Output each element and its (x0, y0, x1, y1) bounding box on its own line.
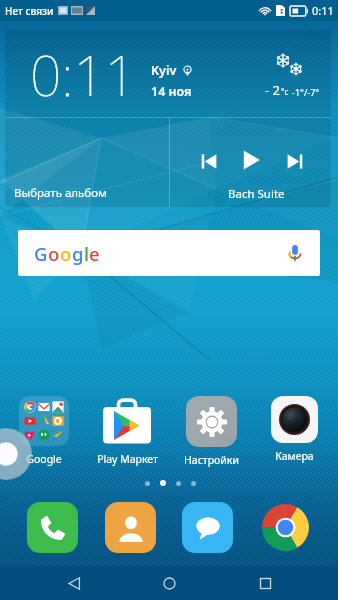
staticText: 0:11 (30, 37, 137, 112)
button[interactable]: Play (237, 147, 263, 173)
button[interactable]: Contacts (105, 502, 156, 553)
button[interactable]: Настройки (171, 396, 251, 467)
staticText: Google (26, 452, 62, 466)
staticText: - 2 (265, 81, 281, 99)
staticText: Камера (275, 449, 314, 463)
staticText: Play Маркет (97, 452, 158, 466)
staticText: 14 ноя (151, 83, 192, 100)
staticText: Настройки (184, 453, 239, 467)
button[interactable]: G (18, 230, 320, 276)
staticText: o (48, 241, 60, 266)
button[interactable]: Back (52, 566, 96, 600)
staticText: 0:11 (312, 3, 334, 18)
staticText: G (34, 241, 48, 266)
button[interactable]: Next (283, 150, 306, 173)
button[interactable]: Google (4, 396, 84, 466)
staticText: o (60, 241, 72, 266)
button[interactable]: 0:11 (5, 30, 331, 207)
button[interactable]: Phone (27, 502, 78, 553)
staticText: l (84, 241, 89, 266)
button[interactable]: Messages (182, 502, 233, 553)
button[interactable]: Recents (243, 566, 287, 600)
staticText: Нет связи (5, 4, 54, 18)
staticText: g (72, 241, 84, 266)
button[interactable]: Камера (254, 396, 334, 463)
button[interactable]: Navigation dot (0, 428, 32, 480)
staticText: Kyiv (151, 62, 177, 79)
staticText: °c (281, 86, 289, 97)
button[interactable]: Play Маркет (87, 396, 167, 466)
button[interactable]: Выбрать альбом (5, 118, 169, 207)
button[interactable]: Voice search (284, 242, 306, 264)
button[interactable]: Chrome (260, 502, 311, 553)
staticText: Bach Suite (228, 186, 285, 202)
staticText: e (89, 241, 100, 266)
staticText: -1°/-7° (292, 86, 320, 98)
button[interactable]: Previous (198, 150, 221, 173)
button[interactable]: Home (147, 566, 191, 600)
staticText: Выбрать альбом (14, 185, 107, 201)
